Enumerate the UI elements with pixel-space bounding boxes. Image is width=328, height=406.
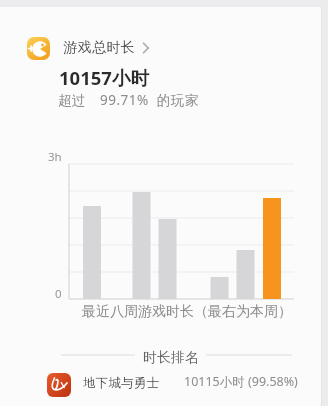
- staticText: 最近八周游戏时长（最右为本周）: [27, 303, 328, 406]
- staticText: 10157小时: [59, 65, 149, 90]
- staticText: 时长排名: [143, 349, 199, 367]
- staticText: 10115小时 (99.58%): [184, 373, 298, 390]
- staticText: 游戏总时长: [63, 39, 135, 57]
- staticText: 超过 99.71% 的玩家: [58, 91, 199, 109]
- staticText: 0: [55, 286, 62, 302]
- button[interactable]: 地下城与勇士: [40, 370, 322, 404]
- staticText: 3h: [48, 149, 62, 165]
- staticText: 地下城与勇士: [83, 375, 160, 391]
- button[interactable]: 游戏总时长: [24, 33, 164, 63]
